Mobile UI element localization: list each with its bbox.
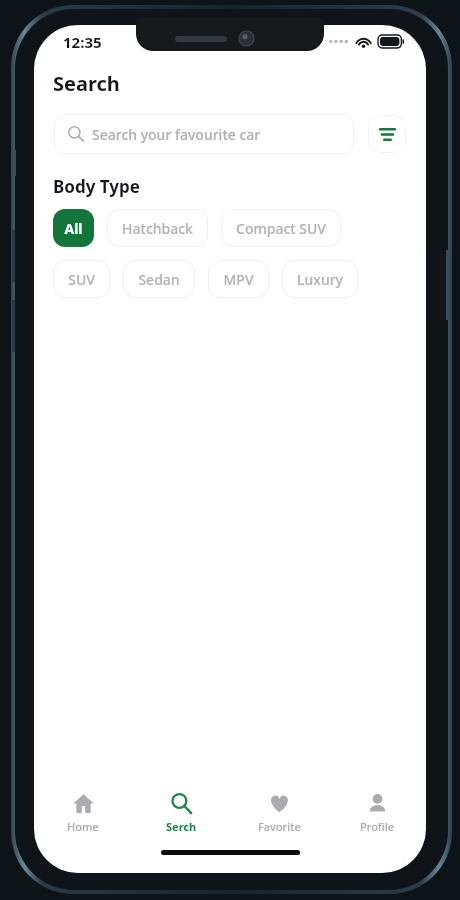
staticText: Profile: [360, 819, 395, 834]
staticText: Sedan: [138, 270, 180, 289]
staticText: Favorite: [258, 819, 301, 834]
button[interactable]: All: [53, 209, 94, 247]
button[interactable]: Luxury: [282, 260, 358, 298]
staticText: Serch: [166, 819, 197, 834]
staticText: Hatchback: [122, 219, 193, 238]
button[interactable]: Filter: [368, 115, 406, 153]
staticText: Body Type: [53, 175, 140, 198]
button[interactable]: SUV: [53, 260, 110, 298]
staticText: 12:35: [63, 32, 102, 52]
staticText: SUV: [68, 270, 95, 289]
button[interactable]: Hatchback: [107, 209, 208, 247]
button[interactable]: Sedan: [123, 260, 195, 298]
staticText: Luxury: [297, 270, 343, 289]
button[interactable]: Home: [34, 782, 132, 844]
staticText: All: [64, 219, 83, 238]
button[interactable]: Search your favourite car: [54, 114, 354, 154]
button[interactable]: MPV: [208, 260, 269, 298]
button[interactable]: Favorite: [230, 782, 328, 844]
button[interactable]: Serch: [132, 782, 230, 844]
staticText: Compact SUV: [236, 219, 326, 238]
staticText: Search: [53, 70, 120, 97]
button[interactable]: Compact SUV: [221, 209, 341, 247]
button[interactable]: Profile: [328, 782, 426, 844]
staticText: Home: [67, 819, 99, 834]
staticText: Search your favourite car: [92, 125, 261, 144]
staticText: MPV: [223, 270, 254, 289]
